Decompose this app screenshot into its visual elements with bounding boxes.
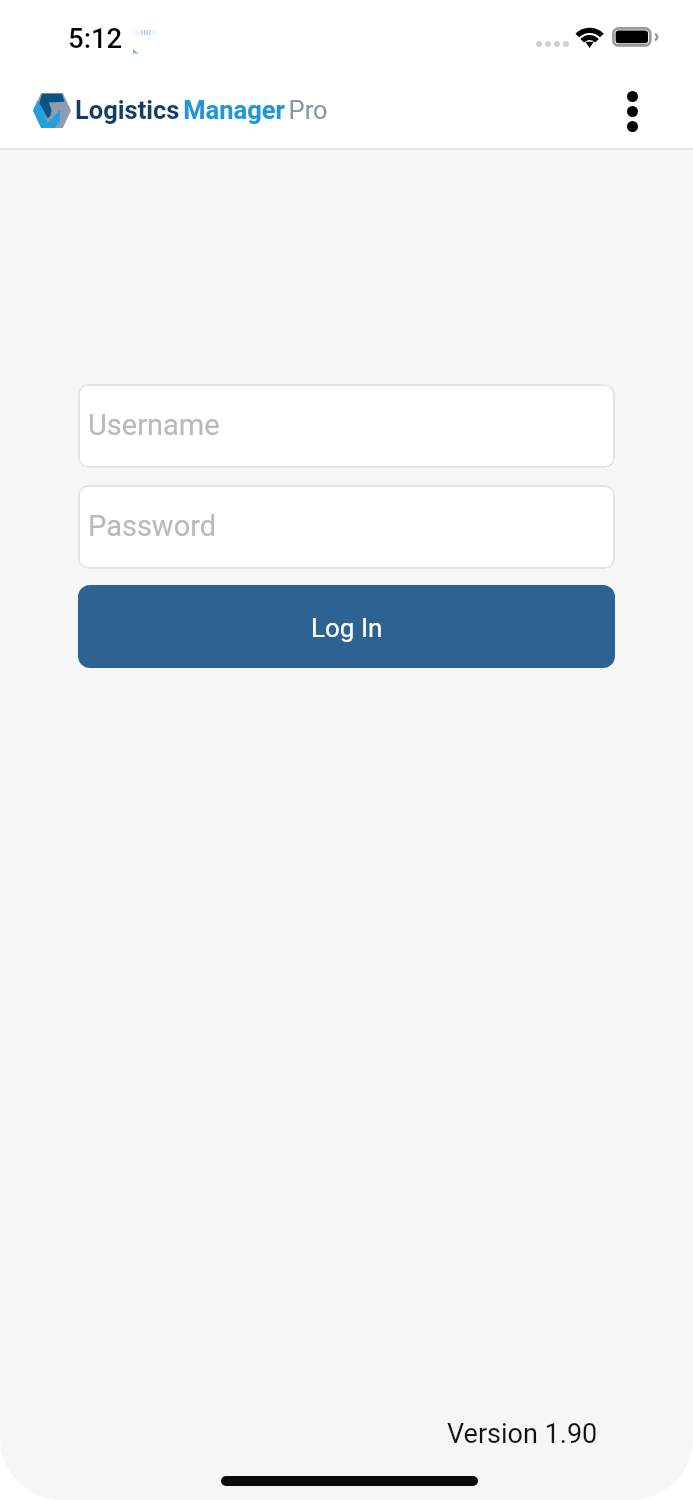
staticText: 5:12 xyxy=(68,22,123,54)
staticText: Password xyxy=(88,509,217,543)
staticText: Logistics Manager Pro xyxy=(75,95,328,125)
button[interactable]: Password xyxy=(78,485,615,569)
staticText: Username xyxy=(88,408,220,442)
staticText: Version 1.90 xyxy=(447,1418,598,1450)
button[interactable]: More options xyxy=(606,85,658,137)
button[interactable]: Log In xyxy=(78,585,615,668)
staticText: Log In xyxy=(311,613,383,643)
button[interactable]: Username xyxy=(78,384,615,468)
